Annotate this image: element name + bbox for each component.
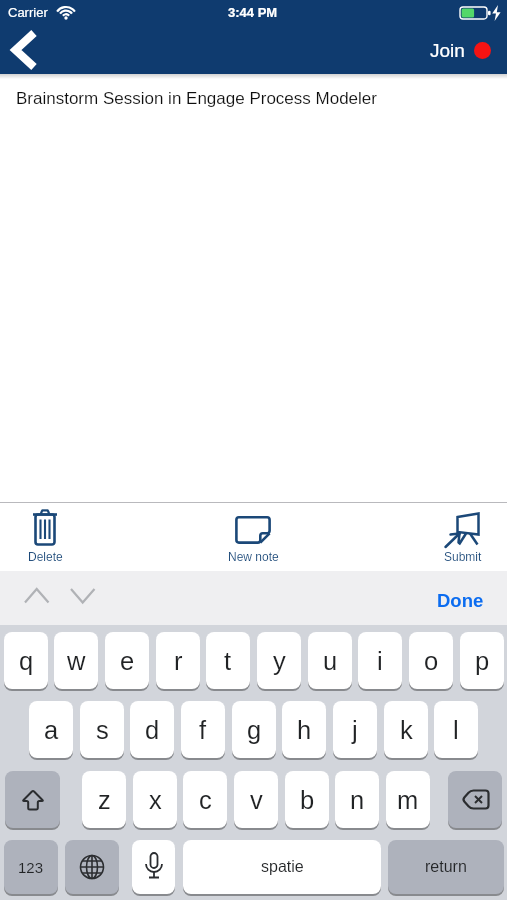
button[interactable] bbox=[132, 840, 175, 894]
staticText: c bbox=[199, 786, 212, 814]
staticText: y bbox=[273, 647, 286, 675]
staticText: v bbox=[250, 786, 263, 814]
staticText: x bbox=[149, 786, 162, 814]
staticText: Join bbox=[430, 40, 465, 61]
staticText: d bbox=[145, 716, 160, 744]
button[interactable]: p bbox=[460, 632, 504, 689]
staticText: t bbox=[224, 647, 232, 675]
button[interactable]: i bbox=[358, 632, 402, 689]
staticText: g bbox=[247, 716, 262, 744]
staticText: n bbox=[350, 786, 365, 814]
button[interactable]: k bbox=[384, 701, 428, 758]
button[interactable]: s bbox=[80, 701, 124, 758]
staticText: h bbox=[297, 716, 312, 744]
staticText: p bbox=[475, 647, 490, 675]
button[interactable]: Done bbox=[428, 586, 492, 614]
staticText: a bbox=[44, 716, 59, 744]
staticText: e bbox=[120, 647, 135, 675]
button[interactable]: v bbox=[234, 771, 278, 828]
staticText: o bbox=[424, 647, 439, 675]
button[interactable]: x bbox=[133, 771, 177, 828]
staticText: k bbox=[400, 716, 413, 744]
button[interactable]: j bbox=[333, 701, 377, 758]
staticText: q bbox=[19, 647, 34, 675]
button[interactable] bbox=[64, 583, 102, 611]
staticText: return bbox=[425, 858, 467, 876]
staticText: b bbox=[300, 786, 315, 814]
button[interactable]: Join bbox=[430, 36, 491, 64]
button[interactable]: h bbox=[282, 701, 326, 758]
staticText: j bbox=[352, 716, 358, 744]
staticText: s bbox=[96, 716, 109, 744]
button[interactable]: o bbox=[409, 632, 453, 689]
button[interactable]: d bbox=[130, 701, 174, 758]
button[interactable]: Delete bbox=[13, 505, 77, 567]
button[interactable]: b bbox=[285, 771, 329, 828]
button[interactable] bbox=[18, 583, 56, 611]
button[interactable]: e bbox=[105, 632, 149, 689]
button[interactable]: c bbox=[183, 771, 227, 828]
staticText: 123 bbox=[18, 859, 44, 876]
staticText: i bbox=[377, 647, 383, 675]
button[interactable] bbox=[5, 771, 60, 828]
staticText: Delete bbox=[28, 550, 63, 563]
button[interactable]: y bbox=[257, 632, 301, 689]
button[interactable]: w bbox=[54, 632, 98, 689]
button[interactable]: z bbox=[82, 771, 126, 828]
button[interactable]: t bbox=[206, 632, 250, 689]
button[interactable]: f bbox=[181, 701, 225, 758]
button[interactable] bbox=[4, 28, 48, 72]
button[interactable]: a bbox=[29, 701, 73, 758]
button[interactable]: Submit bbox=[425, 505, 500, 567]
staticText: f bbox=[199, 716, 207, 744]
button[interactable]: r bbox=[156, 632, 200, 689]
staticText: Carrier bbox=[8, 5, 48, 20]
staticText: spatie bbox=[261, 858, 304, 876]
staticText: l bbox=[453, 716, 459, 744]
staticText: m bbox=[397, 786, 419, 814]
button[interactable]: return bbox=[388, 840, 504, 894]
button[interactable]: 123 bbox=[4, 840, 58, 894]
button[interactable]: q bbox=[4, 632, 48, 689]
staticText: r bbox=[174, 647, 183, 675]
staticText: 3:44 PM bbox=[228, 5, 278, 20]
button[interactable]: n bbox=[335, 771, 379, 828]
button[interactable] bbox=[448, 771, 502, 828]
staticText: w bbox=[67, 647, 86, 675]
staticText: Brainstorm Session in Engage Process Mod… bbox=[16, 89, 377, 108]
staticText: Submit bbox=[444, 550, 482, 563]
button[interactable]: m bbox=[386, 771, 430, 828]
staticText: z bbox=[98, 786, 111, 814]
button[interactable]: g bbox=[232, 701, 276, 758]
button[interactable] bbox=[65, 840, 119, 894]
staticText: New note bbox=[228, 550, 279, 563]
button[interactable]: u bbox=[308, 632, 352, 689]
button[interactable]: l bbox=[434, 701, 478, 758]
button[interactable]: New note bbox=[205, 505, 301, 567]
staticText: u bbox=[323, 647, 338, 675]
button[interactable]: spatie bbox=[183, 840, 381, 894]
staticText: Done bbox=[437, 590, 484, 611]
